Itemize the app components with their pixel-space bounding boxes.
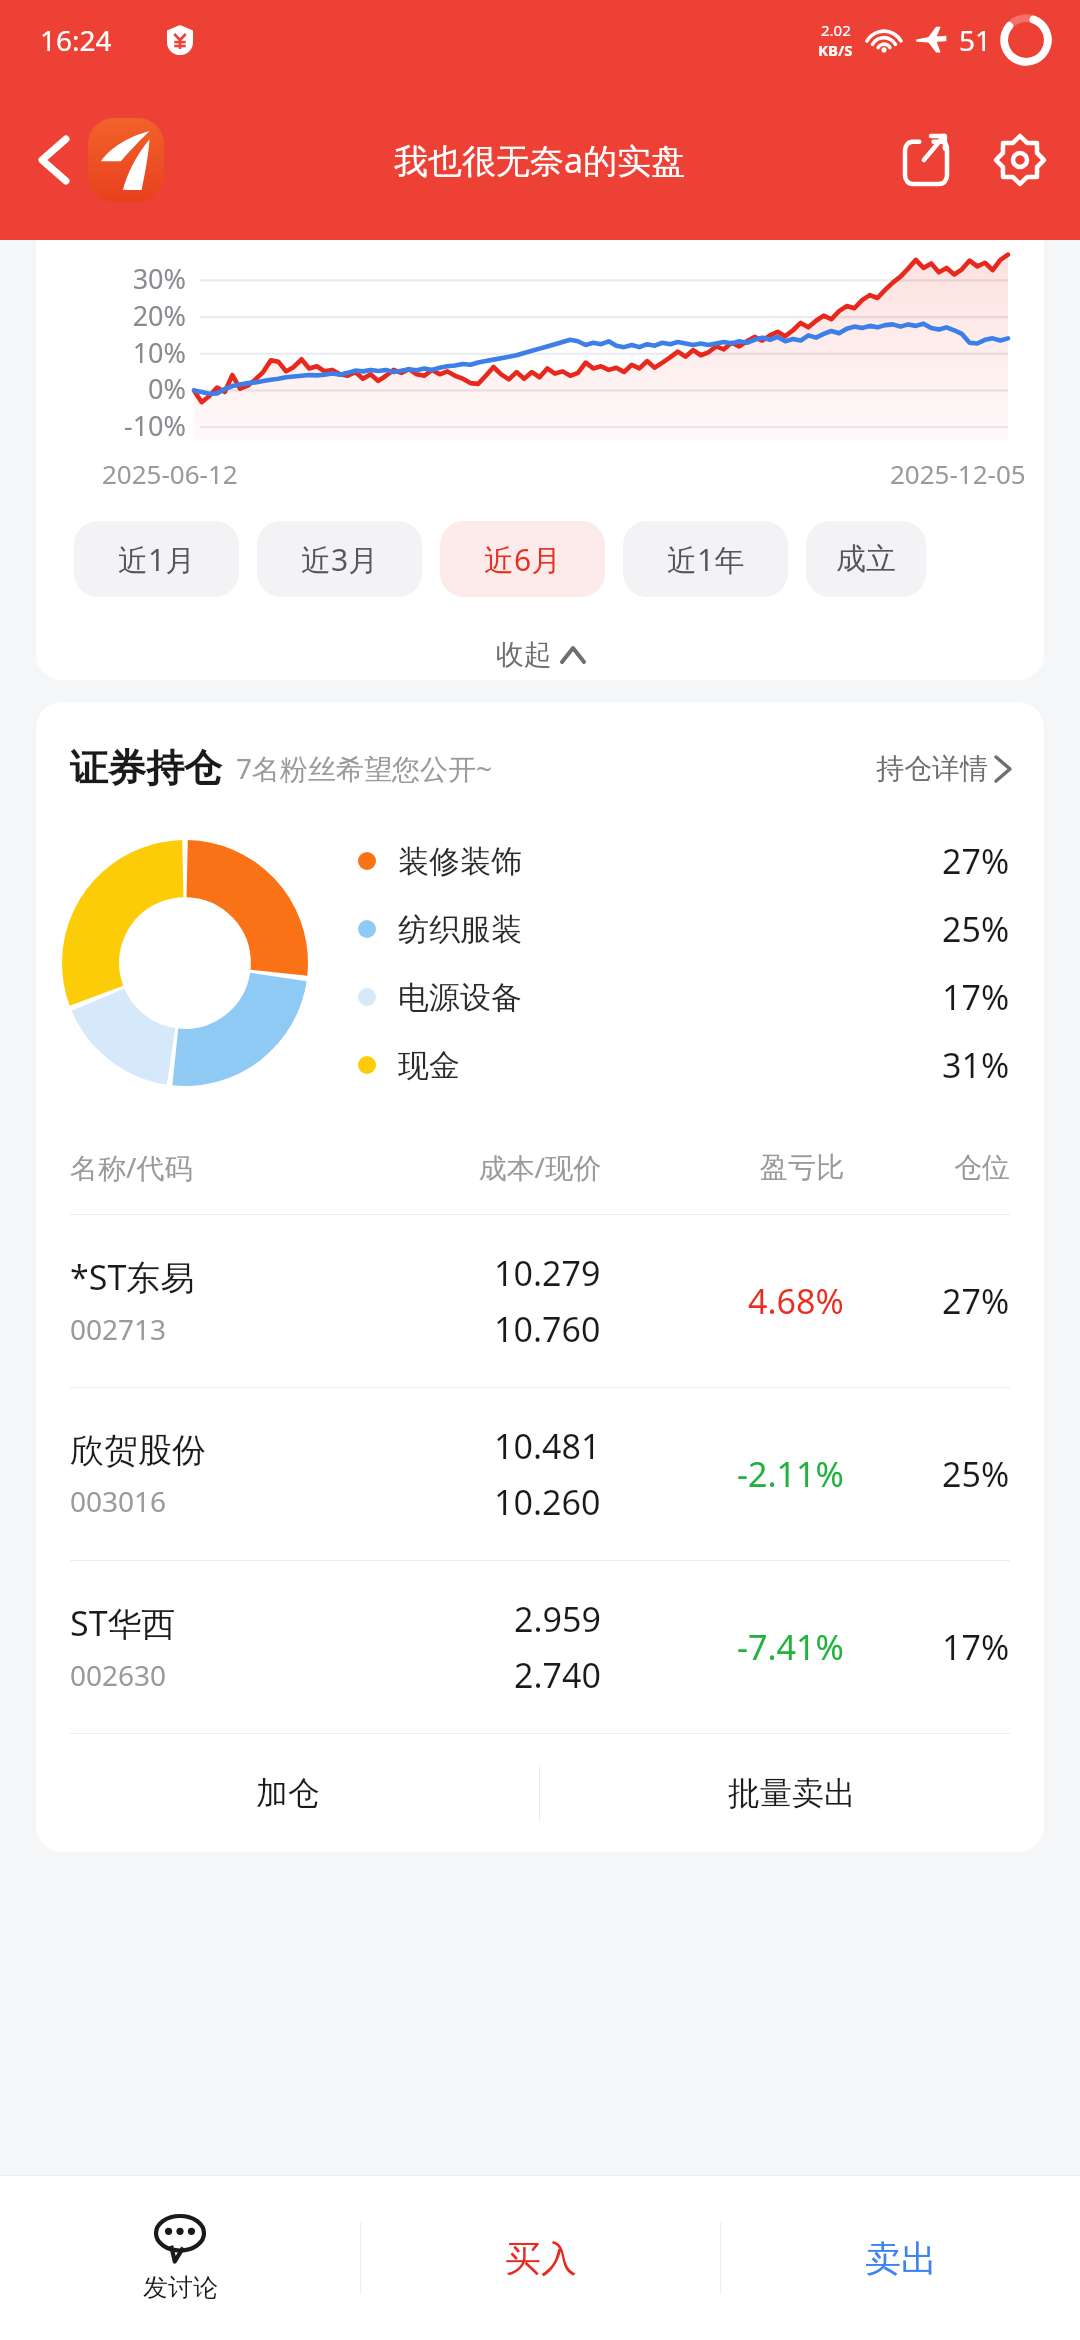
staticText: 51 [959,21,992,59]
staticText: 近6月 [484,539,562,580]
button[interactable]: 成立 [806,521,926,597]
staticText: 卖出 [865,2236,937,2281]
staticText: 10% [36,334,186,371]
staticText: KB/S [818,40,853,60]
button[interactable]: Back [22,128,86,192]
staticText: 7名粉丝希望您公开~ [236,749,493,787]
staticText: 31% [942,1042,1010,1088]
staticText: 欣贺股份 [70,1429,206,1472]
button[interactable]: 持仓详情 [876,751,1010,786]
staticText: 17% [942,974,1010,1020]
button[interactable]: 卖出 [721,2176,1080,2340]
staticText: 10.481 [494,1423,601,1469]
staticText: 16:24 [40,21,112,59]
staticText: 2.02 [821,20,851,40]
button[interactable]: 近1月 [74,521,239,597]
staticText: 近1月 [118,539,196,580]
staticText: -7.41% [737,1624,844,1670]
staticText: -10% [36,407,186,444]
button[interactable]: 买入 [361,2176,720,2340]
button[interactable]: 近6月 [440,521,605,597]
staticText: 装修装饰 [398,842,522,881]
button[interactable]: Share [890,124,962,196]
staticText: ST华西 [70,1600,176,1646]
staticText: 002630 [70,1656,167,1694]
staticText: 近3月 [301,539,379,580]
staticText: 10.260 [494,1479,601,1525]
staticText: 名称/代码 [70,1148,193,1186]
staticText: 30% [36,260,186,297]
staticText: 纺织服装 [398,910,522,949]
staticText: 10.760 [494,1306,601,1352]
staticText: 批量卖出 [728,1773,856,1813]
staticText: 2.740 [514,1652,601,1698]
staticText: *ST东易 [70,1254,195,1300]
staticText: 25% [942,1451,1010,1497]
staticText: 2.959 [514,1596,601,1642]
staticText: 发讨论 [143,2272,218,2303]
staticText: 现金 [398,1046,460,1085]
button[interactable]: 发讨论 [0,2176,360,2340]
staticText: 002713 [70,1310,167,1348]
staticText: 我也很无奈a的实盘 [394,137,686,183]
staticText: 持仓详情 [876,751,988,786]
staticText: 收起 [496,637,552,672]
staticText: 买入 [505,2236,577,2281]
staticText: 4.68% [748,1278,844,1324]
staticText: 成本/现价 [325,1148,601,1186]
staticText: 27% [942,1278,1010,1324]
staticText: 近1年 [667,539,745,580]
button[interactable]: 加仓 [36,1734,539,1852]
button[interactable]: 近1年 [623,521,788,597]
button[interactable]: Settings [984,124,1056,196]
button[interactable]: *ST东易 [36,1215,1044,1387]
staticText: 成立 [836,540,896,578]
staticText: 10.279 [494,1250,601,1296]
staticText: 20% [36,297,186,334]
button[interactable]: ST华西 [36,1561,1044,1733]
staticText: 25% [942,906,1010,952]
staticText: 仓位 [844,1150,1010,1185]
staticText: 证券持仓 [70,744,222,792]
button[interactable]: 收起 [36,637,1044,672]
staticText: 盈亏比 [601,1150,844,1185]
staticText: 2025-12-05 [890,456,1026,491]
button[interactable]: 批量卖出 [540,1734,1044,1852]
staticText: 17% [942,1624,1010,1670]
staticText: -2.11% [737,1451,844,1497]
staticText: 加仓 [256,1773,320,1813]
staticText: 0% [36,370,186,407]
staticText: 2025-06-12 [102,456,238,491]
staticText: 003016 [70,1482,167,1520]
staticText: 电源设备 [398,978,522,1017]
button[interactable]: 欣贺股份 [36,1388,1044,1560]
button[interactable]: 近3月 [257,521,422,597]
staticText: 27% [942,838,1010,884]
